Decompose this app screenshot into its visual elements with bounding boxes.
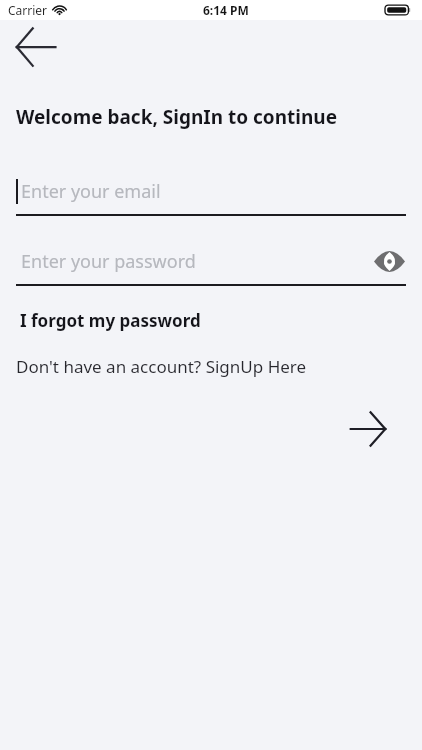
button[interactable]: Enter your email <box>16 175 406 216</box>
staticText: 6:14 PM <box>203 2 249 18</box>
button[interactable]: Don't have an account? SignUp Here <box>16 355 307 378</box>
staticText: I forgot my password <box>20 309 201 332</box>
button[interactable]: Continue <box>344 407 392 451</box>
staticText: Don't have an account? SignUp Here <box>16 355 307 378</box>
button[interactable]: Back <box>9 24 65 72</box>
staticText: Enter your email <box>21 179 161 204</box>
staticText: Carrier <box>8 2 48 18</box>
button[interactable]: Show password <box>373 245 406 277</box>
button[interactable]: I forgot my password <box>20 309 201 332</box>
staticText: Welcome back, SignIn to continue <box>16 104 338 130</box>
button[interactable]: Enter your password <box>21 249 373 274</box>
